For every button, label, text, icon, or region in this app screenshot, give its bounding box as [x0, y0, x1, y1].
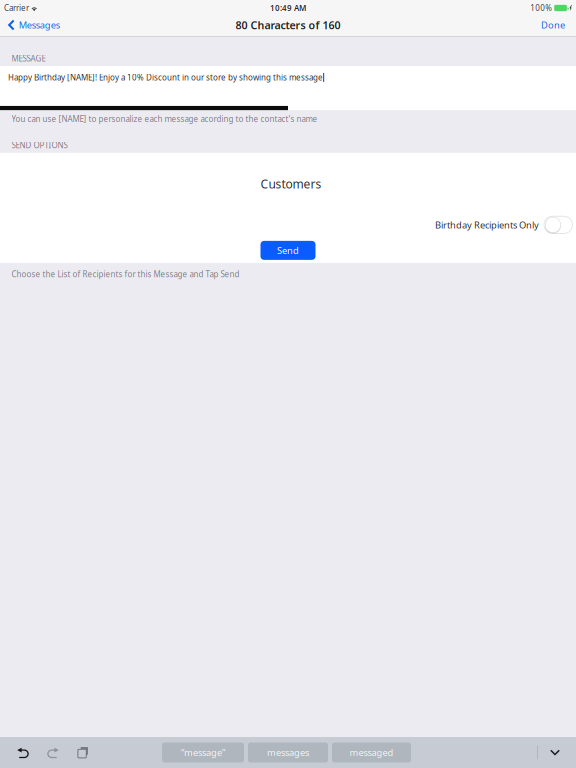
staticText: Choose the List of Recipients for this M…: [11, 269, 239, 279]
button[interactable]: Paste: [68, 737, 98, 768]
button[interactable]: Birthday Recipients Only: [435, 216, 576, 234]
staticText: messaged: [349, 746, 393, 759]
staticText: Messages: [19, 19, 60, 31]
staticText: 80 Characters of 160: [235, 18, 340, 32]
staticText: 10:49 AM: [270, 3, 306, 13]
button[interactable]: messaged: [332, 742, 411, 762]
staticText: messages: [267, 746, 309, 759]
staticText: SEND OPTIONS: [11, 140, 67, 150]
staticText: Birthday Recipients Only: [435, 219, 539, 231]
staticText: Done: [541, 19, 565, 31]
staticText: 100%: [530, 3, 552, 13]
staticText: Send: [277, 244, 299, 257]
button[interactable]: Undo: [8, 737, 38, 768]
staticText: “message”: [181, 746, 225, 759]
button[interactable]: Messages: [0, 16, 68, 37]
button[interactable]: Redo: [38, 737, 68, 768]
button[interactable]: Hide keyboard: [538, 737, 572, 768]
button[interactable]: messages: [248, 742, 328, 762]
staticText: Carrier: [4, 3, 29, 13]
staticText: Customers: [260, 176, 321, 192]
staticText: You can use [NAME] to personalize each m…: [11, 114, 317, 124]
button[interactable]: Send: [260, 241, 315, 260]
staticText: MESSAGE: [11, 53, 45, 64]
button[interactable]: Done: [531, 16, 576, 37]
button[interactable]: “message”: [162, 742, 244, 762]
staticText: Happy Birthday [NAME]! Enjoy a 10% Disco…: [8, 72, 323, 83]
